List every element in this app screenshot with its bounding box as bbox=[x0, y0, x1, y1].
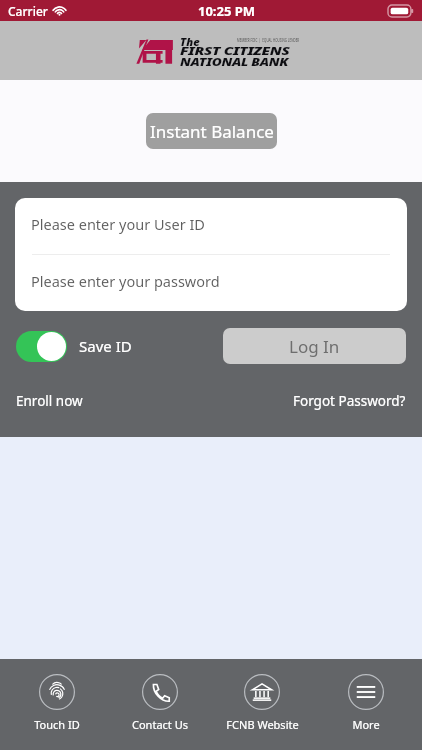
staticText: FCNB Website bbox=[226, 717, 299, 732]
staticText: Enroll now bbox=[16, 392, 83, 410]
button[interactable]: Log In bbox=[223, 328, 406, 364]
staticText: More bbox=[352, 717, 380, 732]
staticText: Please enter your User ID bbox=[31, 214, 205, 234]
staticText: NATIONAL BANK bbox=[180, 55, 288, 69]
staticText: FIRST CITIZENS bbox=[180, 44, 289, 58]
staticText: 10:25 PM bbox=[198, 2, 256, 20]
staticText: Forgot Password? bbox=[293, 392, 406, 410]
button[interactable]: Save ID toggle bbox=[16, 331, 67, 362]
button[interactable]: Instant Balance bbox=[146, 113, 277, 149]
button[interactable]: More bbox=[313, 659, 419, 732]
button[interactable]: Contact Us bbox=[107, 659, 212, 732]
staticText: The bbox=[180, 34, 200, 49]
staticText: Contact Us bbox=[132, 717, 188, 732]
button[interactable]: Please enter your User ID bbox=[15, 198, 407, 254]
staticText: Carrier bbox=[8, 3, 48, 19]
staticText: Touch ID bbox=[34, 717, 80, 732]
button[interactable]: Touch ID bbox=[4, 659, 109, 732]
button[interactable]: FCNB Website bbox=[209, 659, 315, 732]
button[interactable]: Enroll now bbox=[16, 392, 83, 410]
staticText: Please enter your password bbox=[31, 271, 220, 291]
button[interactable]: Forgot Password? bbox=[293, 392, 406, 410]
button[interactable]: Please enter your password bbox=[15, 255, 407, 311]
staticText: Save ID bbox=[79, 336, 132, 356]
staticText: Instant Balance bbox=[150, 120, 274, 143]
staticText: Log In bbox=[289, 335, 340, 358]
staticText: MEMBER FDIC | EQUAL HOUSING LENDER bbox=[237, 37, 300, 43]
